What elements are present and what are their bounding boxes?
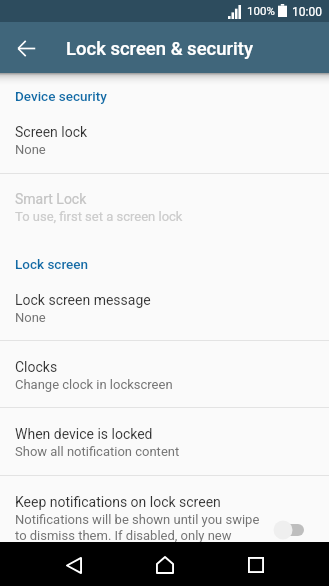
- button[interactable]: Lock screen message: [0, 272, 329, 341]
- staticText: 10:00: [292, 5, 322, 19]
- staticText: Screen lock: [15, 124, 88, 140]
- button[interactable]: Back: [52, 543, 96, 586]
- staticText: Change clock in lockscreen: [15, 377, 173, 392]
- button[interactable]: Home: [143, 543, 187, 586]
- button[interactable]: Clocks: [0, 341, 329, 408]
- staticText: 100%: [247, 4, 275, 17]
- staticText: Show all notification content: [15, 444, 180, 459]
- staticText: When device is locked: [15, 426, 153, 442]
- staticText: Device security: [15, 88, 107, 104]
- staticText: Keep notifications on lock screen: [15, 494, 221, 510]
- button[interactable]: Screen lock: [0, 104, 329, 174]
- staticText: Clocks: [15, 359, 58, 375]
- staticText: None: [15, 310, 46, 325]
- staticText: None: [15, 142, 46, 157]
- button[interactable]: Navigate up: [0, 22, 51, 73]
- button[interactable]: Smart Lock: [0, 174, 329, 240]
- staticText: Smart Lock: [15, 191, 87, 207]
- button[interactable]: Keep notifications on lock screen toggle: [271, 518, 313, 542]
- staticText: Lock screen message: [15, 292, 151, 308]
- staticText: Lock screen & security: [66, 38, 253, 60]
- staticText: Lock screen: [15, 256, 89, 272]
- button[interactable]: Keep notifications on lock screen: [0, 476, 329, 542]
- staticText: To use, first set a screen lock: [15, 209, 183, 224]
- staticText: Notifications will be shown until you sw…: [15, 512, 265, 542]
- button[interactable]: When device is locked: [0, 408, 329, 476]
- button[interactable]: Recent apps: [234, 543, 278, 586]
